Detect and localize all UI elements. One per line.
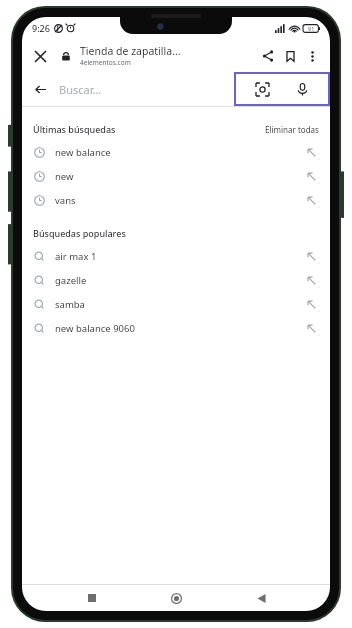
other: Back (31, 80, 49, 98)
button[interactable]: More options (301, 45, 323, 67)
button[interactable]: air max 1 (22, 244, 330, 268)
other: Insert new balance (304, 145, 318, 159)
staticText: new (55, 170, 74, 183)
button[interactable]: Secure site (57, 47, 75, 65)
staticText: 91 (308, 25, 315, 32)
other: Insert new (304, 169, 318, 183)
other: Insert gazelle (304, 273, 318, 287)
button[interactable]: Back (246, 585, 276, 611)
staticText: 4elementos.com (80, 58, 131, 67)
button[interactable]: Tienda de zapatilla… (80, 44, 253, 67)
button[interactable]: new balance 9060 (22, 316, 330, 340)
staticText: 9:26 (32, 22, 50, 34)
button[interactable]: samba (22, 292, 330, 316)
other: Insert vans (304, 193, 318, 207)
button[interactable]: new balance (22, 140, 330, 164)
button[interactable]: gazelle (22, 268, 330, 292)
button[interactable]: Close (29, 45, 51, 67)
staticText: air max 1 (55, 250, 97, 263)
button[interactable]: Eliminar todas (265, 124, 319, 135)
staticText: Búsquedas populares (33, 227, 126, 239)
button[interactable]: new (22, 164, 330, 188)
button[interactable]: Back (22, 72, 234, 106)
button[interactable]: Recent apps (77, 585, 107, 611)
other: Insert samba (304, 297, 318, 311)
button[interactable]: Share (257, 45, 279, 67)
button[interactable]: Bookmark (279, 45, 301, 67)
button[interactable]: Search with Google Lens (249, 76, 275, 102)
other: Insert air max 1 (304, 249, 318, 263)
staticText: vans (55, 194, 76, 207)
staticText: new balance (55, 146, 111, 159)
staticText: new balance 9060 (55, 322, 135, 335)
button[interactable]: vans (22, 188, 330, 212)
button[interactable]: Home (161, 585, 191, 611)
staticText: Buscar… (59, 82, 102, 97)
staticText: samba (55, 298, 85, 311)
staticText: gazelle (55, 274, 87, 287)
staticText: Eliminar todas (265, 124, 319, 135)
staticText: Últimas búsquedas (33, 123, 116, 135)
other: Insert new balance 9060 (304, 321, 318, 335)
staticText: Tienda de zapatilla… (80, 44, 181, 58)
button[interactable]: Voice search (289, 76, 315, 102)
